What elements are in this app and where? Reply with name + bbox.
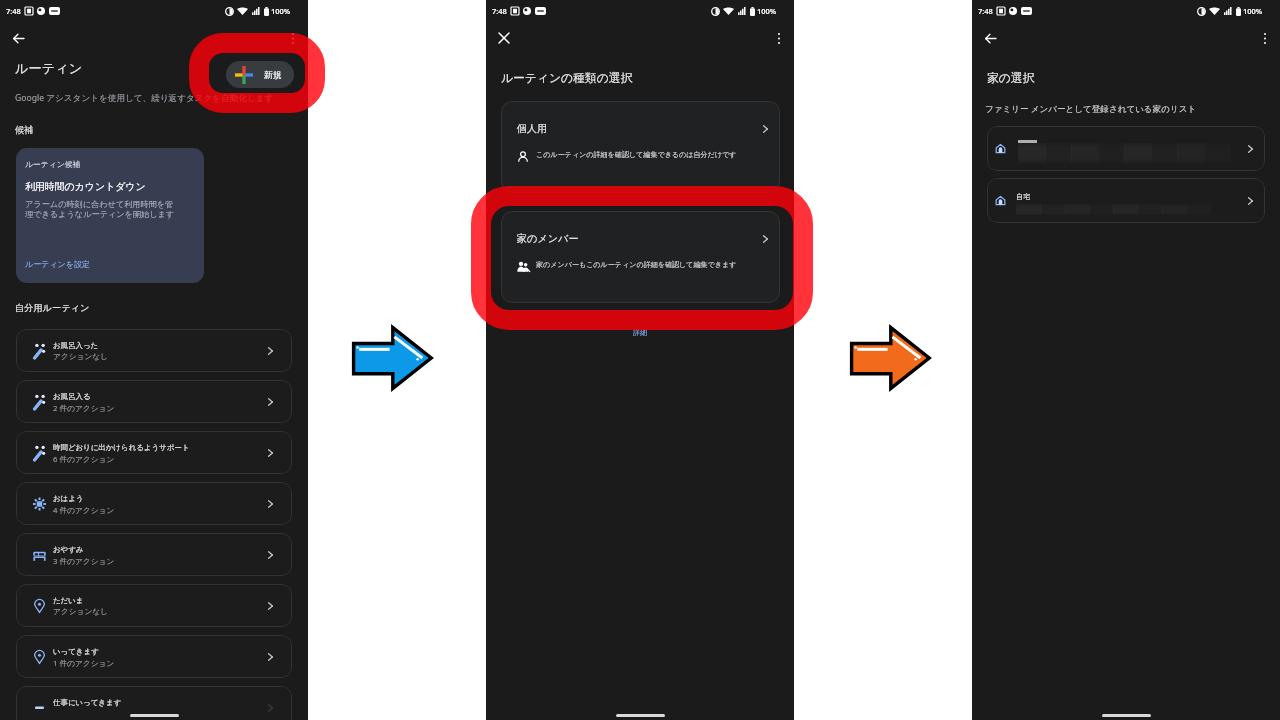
staticText: 7:48 [6, 6, 21, 16]
staticText: 個人用 [517, 122, 548, 135]
staticText: このルーティンの詳細を確認して編集できるのは自分だけです [536, 150, 737, 159]
staticText: 時間どおりに出かけられるようサポート [53, 443, 268, 452]
staticText: 100% [271, 6, 291, 16]
button[interactable]: 詳細 [633, 328, 647, 337]
button[interactable] [987, 126, 1265, 171]
staticText: Google アシスタントを使用して、繰り返すタスクを自動化します [15, 92, 315, 104]
staticText: 家のメンバー [517, 232, 579, 245]
button[interactable]: お風呂入った [16, 329, 292, 372]
staticText: 7:48 [492, 6, 507, 16]
staticText: おやすみ [53, 545, 268, 554]
button[interactable]: お風呂入る [16, 380, 292, 423]
staticText: 自分用ルーティン [15, 302, 90, 314]
staticText: 7:48 [978, 6, 993, 16]
staticText: 3 件のアクション [53, 556, 268, 567]
staticText: ルーティン [15, 60, 83, 77]
staticText: ファミリー メンバーとして登録されている家のリスト [985, 103, 1197, 115]
button[interactable]: いってきます [16, 635, 292, 678]
button[interactable]: 時間どおりに出かけられるようサポート [16, 431, 292, 474]
staticText: おはよう [53, 494, 268, 503]
staticText: 候補 [15, 124, 34, 136]
button[interactable]: Back [976, 24, 1004, 52]
button[interactable]: 家のメンバー [501, 211, 780, 303]
staticText: お風呂入る [53, 392, 268, 401]
staticText: 新規 [264, 70, 282, 81]
staticText: アラームの時刻に合わせて利用時間を管理できるようなルーティンを開始します [25, 199, 178, 219]
button[interactable]: More options [1253, 26, 1277, 50]
button[interactable]: おやすみ [16, 533, 292, 576]
button[interactable]: More options [767, 26, 791, 50]
staticText: 1 件のアクション [53, 658, 268, 669]
button[interactable]: ルーティンを設定 [25, 259, 90, 269]
staticText: ただいま [53, 596, 268, 605]
staticText: アクションなし [53, 607, 268, 617]
staticText: 利用時間のカウントダウン [25, 180, 146, 192]
staticText: 2 件のアクション [53, 403, 268, 414]
staticText: 6 件のアクション [53, 454, 268, 465]
button[interactable]: おはよう [16, 482, 292, 525]
staticText: 仕事にいってきます [53, 698, 268, 707]
button[interactable]: More options [281, 26, 305, 50]
button[interactable]: Close [490, 24, 518, 52]
staticText: お風呂入った [53, 341, 268, 350]
button[interactable]: 個人用 [501, 101, 780, 193]
staticText: 100% [1243, 6, 1263, 16]
staticText: いってきます [53, 647, 268, 656]
button[interactable]: 仕事にいってきます [16, 686, 292, 720]
staticText: アクションなし [53, 352, 268, 362]
button[interactable]: 新規 [226, 61, 294, 88]
staticText: 自宅 [1016, 192, 1031, 201]
staticText: 家のメンバーもこのルーティンの詳細を確認して編集できます [536, 260, 737, 269]
button[interactable]: Back [4, 24, 32, 52]
staticText: 100% [757, 6, 777, 16]
button[interactable]: ルーティン候補 [16, 148, 204, 283]
staticText: 4 件のアクション [53, 505, 268, 516]
staticText: ルーティン候補 [25, 159, 81, 169]
staticText: 家の選択 [987, 71, 1035, 86]
staticText: ルーティンの種類の選択 [501, 71, 633, 86]
button[interactable]: 自宅 [987, 178, 1265, 223]
button[interactable]: ただいま [16, 584, 292, 627]
